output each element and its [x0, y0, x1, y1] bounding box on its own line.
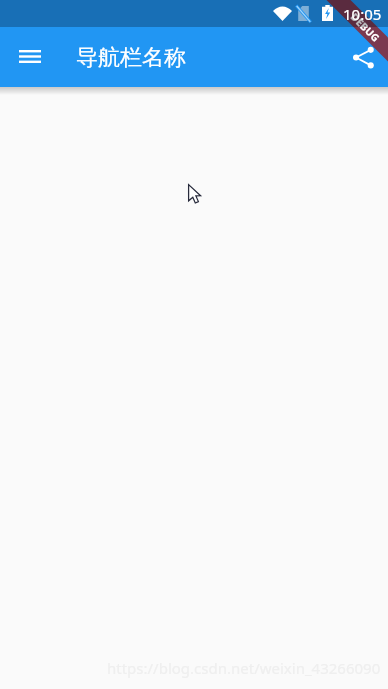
staticText: https://blog.csdn.net/weixin_43266090 — [107, 658, 381, 678]
staticText: 10:05 — [343, 4, 382, 24]
button[interactable]: Share — [339, 33, 387, 81]
button[interactable]: Open navigation drawer — [6, 32, 54, 80]
staticText: 导航栏名称 — [76, 44, 186, 72]
